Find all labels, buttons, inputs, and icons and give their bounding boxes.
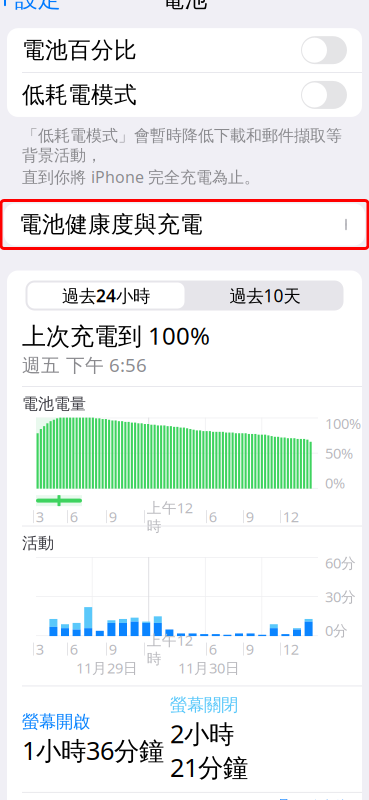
button[interactable]: 電池健康度與充電 (1, 200, 368, 248)
staticText: 11月30日 (178, 658, 240, 678)
staticText: 30分 (325, 587, 356, 606)
staticText: 低耗電模式 (22, 81, 137, 109)
staticText: 上次充電到 100% (22, 319, 210, 351)
staticText: 過去24小時 (62, 284, 150, 307)
staticText: 直到你將 iPhone 完全充電為止。 (22, 166, 260, 187)
staticText: 螢幕關閉 (170, 694, 238, 716)
staticText: 螢幕開啟 (22, 711, 90, 732)
staticText: 6 (209, 507, 217, 526)
staticText: 12 (283, 507, 299, 526)
staticText: 電池 (161, 0, 207, 13)
button[interactable]: 過去24小時 (25, 280, 186, 310)
staticText: 2小時21分鐘 (170, 717, 248, 784)
staticText: 3 (36, 639, 44, 659)
staticText: 9 (246, 507, 254, 526)
staticText: 9 (109, 639, 117, 659)
button[interactable]: 顯示活動 (279, 797, 347, 800)
staticText: 6 (70, 639, 78, 659)
button[interactable]: 過去10天 (186, 280, 343, 310)
staticText: 0% (325, 473, 345, 493)
staticText: 上午12時 (147, 498, 193, 535)
button[interactable]: 低耗電模式 (7, 73, 362, 117)
staticText: 上午12時 (147, 630, 193, 668)
staticText: 3 (36, 507, 44, 526)
staticText: 0分 (325, 621, 348, 640)
staticText: 9 (109, 507, 117, 526)
staticText: 電池健康度與充電 (19, 211, 203, 238)
staticText: 100% (325, 414, 361, 433)
staticText: 6 (70, 507, 78, 526)
staticText: 電池百分比 (22, 36, 137, 64)
button[interactable]: 電池百分比 (7, 28, 362, 72)
staticText: 活動 (22, 533, 54, 553)
staticText: 週五 下午 6:56 (22, 352, 147, 377)
staticText: 電池電量 (22, 394, 86, 414)
staticText: 過去10天 (229, 284, 300, 307)
staticText: 9 (246, 639, 254, 659)
staticText: 11月29日 (76, 658, 138, 678)
button[interactable]: 設定 (1, 0, 69, 19)
staticText: 顯示活動 (279, 797, 347, 800)
staticText: 「低耗電模式」會暫時降低下載和郵件擷取等背景活動， (22, 126, 342, 165)
staticText: 設定 (15, 0, 61, 13)
staticText: 12 (283, 639, 299, 659)
staticText: 6 (209, 639, 217, 659)
staticText: 50% (325, 443, 353, 463)
staticText: 1小時36分鐘 (22, 733, 164, 767)
staticText: 60分 (325, 553, 356, 573)
